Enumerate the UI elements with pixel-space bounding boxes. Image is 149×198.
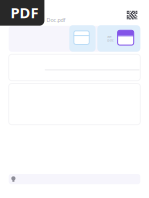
staticText: PDF	[10, 3, 38, 22]
staticText: code	[107, 39, 114, 42]
button[interactable]: Scan QR code	[127, 11, 137, 19]
staticText: Doc.pdf	[46, 16, 65, 23]
button[interactable]: Suggestions	[9, 174, 140, 184]
staticText: Scan	[107, 35, 112, 38]
